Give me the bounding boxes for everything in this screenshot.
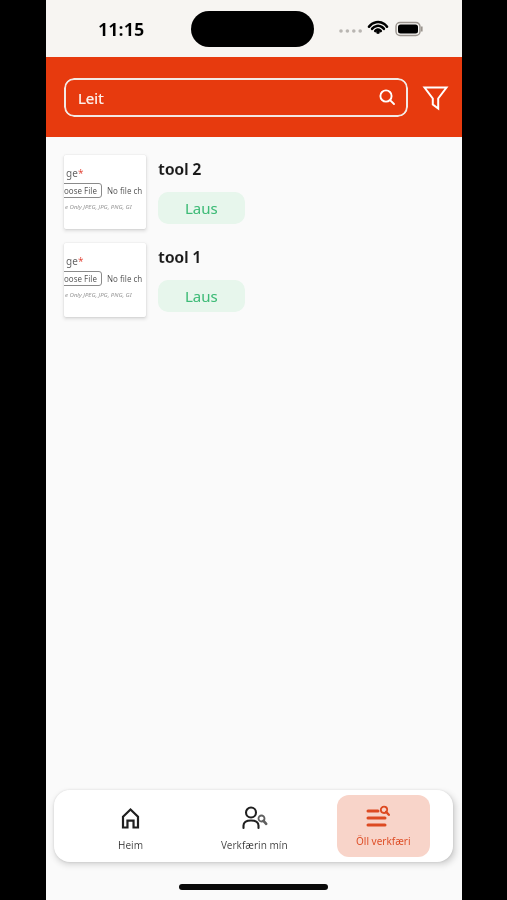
staticText: 11:15 xyxy=(98,17,145,42)
button[interactable]: Verkfærin mín xyxy=(189,790,319,862)
staticText: Heim xyxy=(118,838,143,852)
button[interactable] xyxy=(419,82,451,114)
staticText: Verkfærin mín xyxy=(221,838,288,852)
staticText: oose File xyxy=(64,185,97,196)
staticText: No file ch xyxy=(107,185,143,196)
staticText: oose File xyxy=(64,273,97,284)
staticText: ge xyxy=(66,166,78,180)
staticText: tool 1 xyxy=(158,246,202,268)
button[interactable]: Laus xyxy=(158,280,245,312)
button[interactable]: Heim xyxy=(88,790,172,862)
button[interactable]: ge xyxy=(64,155,146,229)
staticText: Laus xyxy=(185,198,218,218)
button[interactable]: Laus xyxy=(158,192,245,224)
button[interactable]: Öll verkfæri xyxy=(337,795,430,857)
staticText: tool 2 xyxy=(158,158,202,180)
staticText: e Only JPEG, JPG, PNG, GI xyxy=(65,203,132,211)
button[interactable]: ge xyxy=(64,243,146,317)
staticText: Laus xyxy=(185,286,218,306)
staticText: Leit xyxy=(78,88,104,108)
button[interactable]: Leit xyxy=(64,78,408,117)
staticText: No file ch xyxy=(107,273,143,284)
staticText: Öll verkfæri xyxy=(356,834,411,848)
staticText: * xyxy=(78,254,84,268)
staticText: e Only JPEG, JPG, PNG, GI xyxy=(65,291,132,299)
staticText: ge xyxy=(66,254,78,268)
staticText: * xyxy=(78,166,84,180)
